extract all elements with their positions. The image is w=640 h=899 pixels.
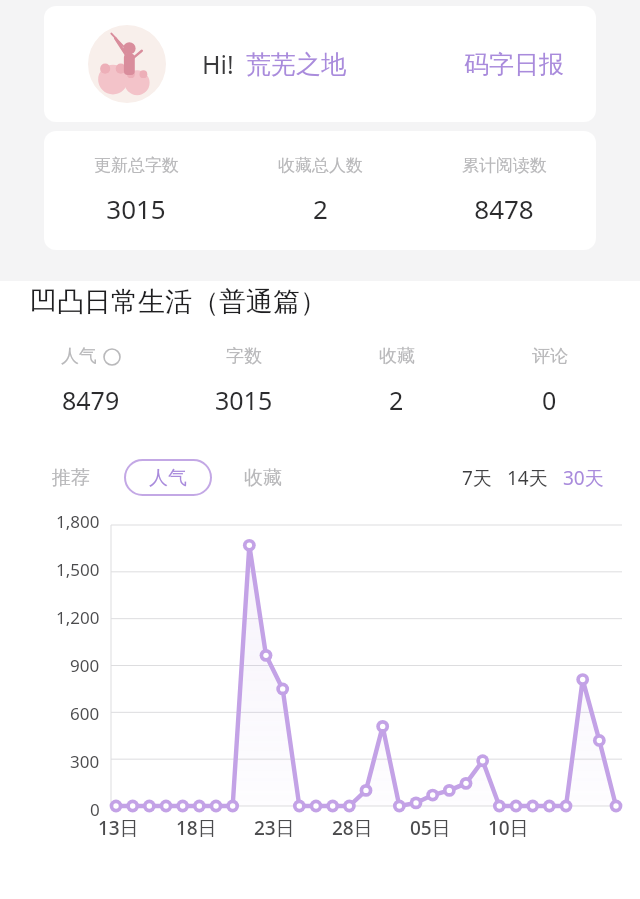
staticText: 0 [90, 798, 100, 821]
staticText: 收藏 [379, 345, 415, 368]
staticText: 600 [70, 702, 100, 725]
staticText: 0 [542, 383, 557, 417]
staticText: 评论 [532, 345, 568, 368]
staticText: 13日 [98, 815, 139, 841]
staticText: 10日 [488, 815, 529, 841]
button[interactable]: 字数 [167, 345, 320, 417]
staticText: 字数 [226, 345, 262, 368]
staticText: 900 [70, 654, 100, 677]
staticText: 人气 [61, 345, 97, 368]
button[interactable]: 评论 [473, 345, 626, 417]
staticText: 收藏总人数 [278, 155, 363, 176]
staticText: 人气 [149, 466, 187, 490]
button[interactable]: 30天 [563, 465, 604, 491]
staticText: 05日 [410, 815, 451, 841]
button[interactable]: 推荐 [52, 466, 90, 490]
button[interactable]: 累计阅读数 [412, 131, 596, 250]
button[interactable]: 用户头像 [88, 25, 166, 103]
button[interactable]: 码字日报 [464, 49, 564, 80]
staticText: 3015 [215, 383, 273, 417]
staticText: 3015 [106, 191, 166, 226]
staticText: 28日 [332, 815, 373, 841]
staticText: 2 [389, 383, 404, 417]
button[interactable]: 人气 [14, 345, 167, 417]
button[interactable]: 收藏 [244, 466, 282, 490]
staticText: 8478 [474, 191, 534, 226]
button[interactable]: 荒芜之地 [246, 49, 346, 80]
button[interactable]: 收藏总人数 [228, 131, 412, 250]
button[interactable]: 收藏 [320, 345, 473, 417]
staticText: 2 [313, 191, 328, 226]
staticText: Hi! [202, 47, 234, 81]
button[interactable]: 人气 [124, 459, 212, 496]
staticText: 1,200 [56, 606, 100, 629]
staticText: 更新总字数 [94, 155, 179, 176]
staticText: 1,800 [56, 510, 100, 533]
button[interactable]: 7天 [462, 465, 492, 491]
staticText: 8479 [62, 383, 120, 417]
button[interactable]: 凹凸日常生活（普通篇） [30, 285, 327, 319]
staticText: 300 [70, 750, 100, 773]
staticText: 累计阅读数 [462, 155, 547, 176]
staticText: 23日 [254, 815, 295, 841]
button[interactable]: 更新总字数 [44, 131, 228, 250]
button[interactable]: 14天 [507, 465, 548, 491]
staticText: 18日 [176, 815, 217, 841]
other: 说明 [103, 348, 121, 366]
staticText: 1,500 [56, 558, 100, 581]
